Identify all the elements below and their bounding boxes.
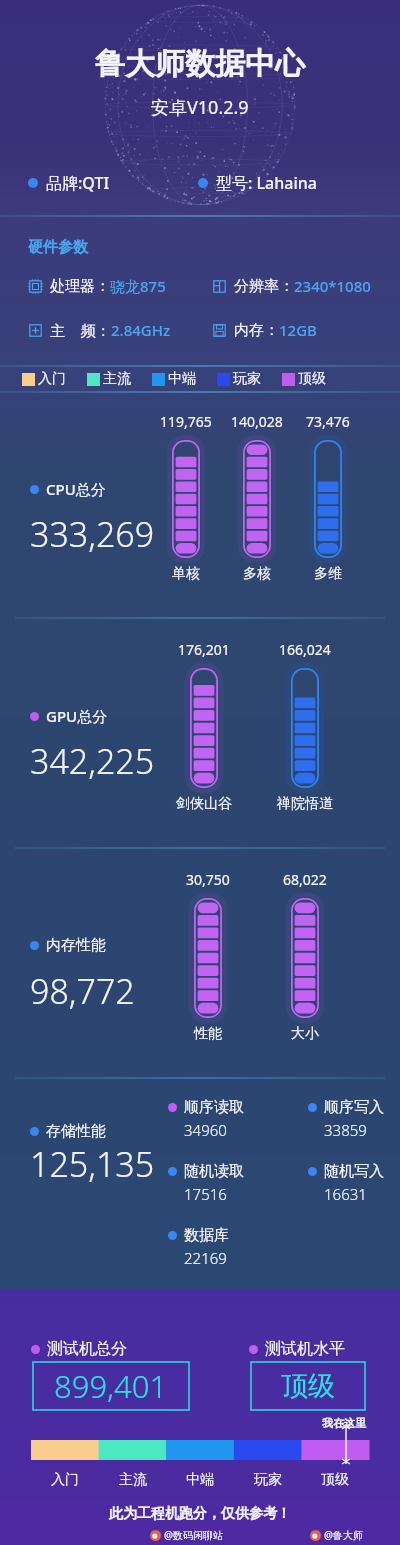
- staticText: @鲁大师: [324, 1528, 363, 1542]
- button[interactable]: 随机写入: [308, 1162, 384, 1204]
- button[interactable]: 顶级: [251, 1362, 365, 1410]
- button[interactable]: 主流: [87, 370, 131, 388]
- staticText: 12GB: [279, 320, 317, 340]
- staticText: 34960: [184, 1120, 227, 1140]
- other: 分辨率：: [212, 279, 227, 294]
- staticText: 17516: [184, 1184, 227, 1204]
- button[interactable]: 多维: [314, 440, 342, 558]
- staticText: 单核: [172, 565, 200, 583]
- button[interactable]: 数据库: [168, 1226, 229, 1268]
- staticText: 数据库: [184, 1226, 229, 1245]
- staticText: 骁龙875: [110, 276, 166, 296]
- staticText: 68,022: [283, 870, 327, 889]
- staticText: 硬件参数: [28, 238, 88, 257]
- staticText: 166,024: [279, 640, 331, 659]
- staticText: 大小: [291, 1025, 319, 1043]
- staticText: 176,201: [178, 640, 230, 659]
- button[interactable]: 顺序读取: [168, 1098, 244, 1140]
- staticText: 品牌:QTI: [46, 172, 110, 194]
- staticText: 顶级: [321, 1471, 349, 1489]
- staticText: 安卓V10.2.9: [151, 95, 249, 120]
- staticText: 899,401: [54, 1365, 168, 1407]
- staticText: 测试机总分: [47, 1339, 127, 1359]
- staticText: @数码闲聊站: [164, 1528, 223, 1542]
- staticText: GPU总分: [46, 706, 108, 726]
- staticText: 型号: Lahaina: [216, 172, 317, 194]
- staticText: 测试机水平: [265, 1339, 345, 1359]
- staticText: 98,772: [30, 968, 135, 1014]
- button[interactable]: CPU总分: [30, 479, 106, 499]
- staticText: 2.84GHz: [111, 320, 171, 340]
- staticText: 玩家: [254, 1471, 282, 1489]
- staticText: 入门: [51, 1471, 79, 1489]
- staticText: 内存：: [234, 321, 279, 340]
- other: 处理器：: [28, 279, 43, 294]
- button[interactable]: 玩家: [217, 370, 261, 388]
- button[interactable]: 禅院悟道: [291, 668, 319, 788]
- button[interactable]: 主 频：: [28, 320, 171, 340]
- staticText: 中端: [168, 370, 196, 388]
- staticText: 禅院悟道: [277, 795, 333, 813]
- staticText: 我在这里: [322, 1416, 366, 1430]
- button[interactable]: 大小: [291, 898, 319, 1018]
- staticText: 顶级: [281, 1369, 335, 1403]
- staticText: 顺序写入: [324, 1098, 384, 1117]
- staticText: 存储性能: [46, 1122, 106, 1141]
- button[interactable]: 中端: [152, 370, 196, 388]
- other: Weibo: [150, 1530, 161, 1541]
- button[interactable]: 随机读取: [168, 1162, 244, 1204]
- button[interactable]: 内存：: [212, 320, 317, 340]
- staticText: 主流: [103, 370, 131, 388]
- staticText: 顺序读取: [184, 1098, 244, 1117]
- staticText: 多核: [243, 565, 271, 583]
- button[interactable]: 单核: [172, 440, 200, 558]
- button[interactable]: 顶级: [282, 370, 326, 388]
- staticText: 140,028: [231, 412, 283, 431]
- staticText: 33859: [324, 1120, 367, 1140]
- other: 内存：: [212, 323, 227, 338]
- button[interactable]: 性能: [194, 898, 222, 1018]
- staticText: 主流: [119, 1471, 147, 1489]
- staticText: 30,750: [186, 870, 230, 889]
- other: 主 频：: [28, 323, 43, 338]
- staticText: 随机读取: [184, 1162, 244, 1181]
- staticText: 分辨率：: [234, 277, 294, 296]
- button[interactable]: 顺序写入: [308, 1098, 384, 1140]
- staticText: 125,135: [30, 1141, 155, 1187]
- staticText: 顶级: [298, 370, 326, 388]
- staticText: 随机写入: [324, 1162, 384, 1181]
- button[interactable]: 处理器：: [28, 276, 166, 296]
- staticText: 333,269: [30, 511, 155, 557]
- staticText: 入门: [38, 370, 66, 388]
- staticText: 22169: [184, 1248, 227, 1268]
- button[interactable]: 入门: [22, 370, 66, 388]
- staticText: 处理器：: [50, 277, 110, 296]
- staticText: 此为工程机跑分，仅供参考！: [109, 1505, 291, 1523]
- staticText: 玩家: [233, 370, 261, 388]
- staticText: CPU总分: [46, 479, 106, 499]
- button[interactable]: GPU总分: [30, 706, 108, 726]
- staticText: 多维: [314, 565, 342, 583]
- staticText: 73,476: [306, 412, 350, 431]
- staticText: 342,225: [30, 738, 155, 784]
- other: Weibo: [310, 1530, 321, 1541]
- staticText: 主 频：: [50, 320, 111, 340]
- staticText: 剑侠山谷: [176, 795, 232, 813]
- staticText: 内存性能: [46, 936, 106, 955]
- staticText: 2340*1080: [294, 276, 371, 296]
- button[interactable]: 分辨率：: [212, 276, 371, 296]
- staticText: 中端: [186, 1471, 214, 1489]
- button[interactable]: 多核: [243, 440, 271, 558]
- staticText: 鲁大师数据中心: [95, 45, 305, 83]
- button[interactable]: 内存性能: [30, 936, 106, 955]
- staticText: 119,765: [160, 412, 212, 431]
- staticText: 16631: [324, 1184, 367, 1204]
- button[interactable]: 剑侠山谷: [190, 668, 218, 788]
- button[interactable]: 899,401: [33, 1362, 189, 1410]
- staticText: 性能: [194, 1025, 222, 1043]
